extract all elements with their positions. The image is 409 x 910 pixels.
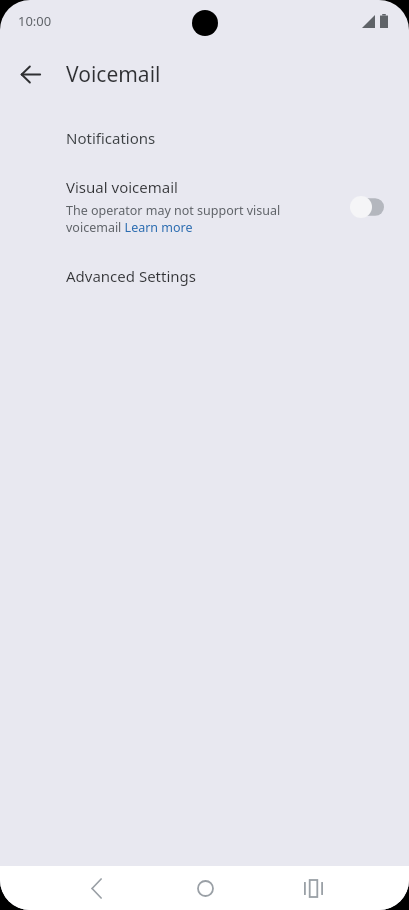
button[interactable]: Notifications <box>0 126 409 150</box>
staticText: The operator may not support visual voic… <box>66 202 288 236</box>
staticText: 10:00 <box>18 12 52 30</box>
button[interactable]: Advanced Settings <box>0 264 409 288</box>
staticText: Visual voicemail <box>66 177 178 197</box>
staticText: Notifications <box>66 128 156 148</box>
button[interactable]: Recent apps <box>293 868 333 908</box>
button[interactable]: Home <box>185 868 225 908</box>
staticText: Voicemail <box>66 60 161 89</box>
staticText: Advanced Settings <box>66 266 196 286</box>
button[interactable]: Back <box>76 868 116 908</box>
button[interactable]: Back <box>8 52 52 96</box>
button[interactable]: Visual voicemail <box>0 177 409 236</box>
button[interactable]: Visual voicemail toggle <box>341 188 393 226</box>
